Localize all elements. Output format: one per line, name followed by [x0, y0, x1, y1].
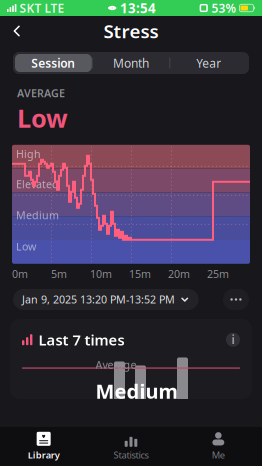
button[interactable]: Me	[175, 426, 262, 466]
staticText: 53%	[211, 0, 236, 16]
staticText: Year	[196, 55, 221, 71]
staticText: i	[231, 332, 234, 348]
staticText: Low	[16, 239, 36, 253]
staticText: SKT	[19, 0, 41, 16]
staticText: 10m	[90, 267, 112, 281]
staticText: Library	[28, 449, 60, 461]
staticText: Jan 9, 2025 13:20 PM-13:52 PM	[22, 292, 175, 307]
staticText: 25m	[207, 267, 229, 281]
staticText: Stress	[103, 19, 158, 43]
button[interactable]: Statistics	[87, 426, 175, 466]
staticText: Me	[212, 449, 225, 461]
button[interactable]: Information	[226, 333, 240, 347]
staticText: High	[16, 147, 41, 161]
button[interactable]: Month	[93, 54, 169, 72]
button[interactable]: Jan 9, 2025 13:20 PM-13:52 PM	[13, 289, 198, 310]
staticText: 5m	[51, 267, 67, 281]
button[interactable]: Year	[170, 54, 247, 72]
staticText: AVERAGE	[17, 86, 65, 100]
staticText: 0m	[12, 267, 28, 281]
button[interactable]: Session	[15, 54, 92, 72]
staticText: Medium	[95, 378, 178, 404]
button[interactable]: Back	[0, 16, 34, 46]
staticText: 20m	[168, 267, 190, 281]
button[interactable]: Library	[0, 426, 87, 466]
staticText: LTE	[44, 0, 64, 16]
staticText: Average	[95, 357, 136, 372]
staticText: 15m	[129, 267, 151, 281]
staticText: Statistics	[113, 449, 148, 461]
staticText: Session	[31, 55, 75, 71]
staticText: Last 7 times	[38, 330, 124, 349]
button[interactable]: More options	[223, 289, 249, 310]
staticText: Elevated	[16, 177, 59, 191]
staticText: Medium	[16, 208, 59, 222]
staticText: Low	[17, 101, 68, 135]
staticText: 13:54	[120, 0, 156, 17]
staticText: Month	[113, 55, 149, 71]
